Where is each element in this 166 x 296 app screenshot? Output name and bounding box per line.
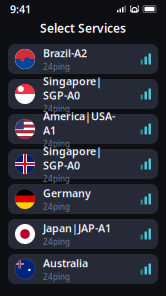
staticText: 24ping <box>43 236 70 247</box>
staticText: 9:41 <box>10 2 31 16</box>
staticText: 24ping <box>43 103 70 114</box>
staticText: 24ping <box>43 138 70 149</box>
staticText: 24ping <box>43 201 70 212</box>
button[interactable]: Germany <box>8 184 158 214</box>
button[interactable]: Brazil-A2 <box>8 44 158 74</box>
staticText: Australia <box>43 256 88 270</box>
button[interactable]: Singapore|SGP-A0 <box>8 79 158 109</box>
button[interactable]: Australia <box>8 254 158 284</box>
staticText: Germany <box>43 186 91 200</box>
staticText: Singapore|SGP-A0 <box>43 74 102 102</box>
button[interactable]: Japan|JAP-A1 <box>8 219 158 249</box>
staticText: Japan|JAP-A1 <box>43 221 111 235</box>
staticText: 24ping <box>43 61 70 72</box>
staticText: 24ping <box>43 173 70 184</box>
staticText: America|USA-A1 <box>43 109 115 137</box>
staticText: Brazil-A2 <box>43 46 87 60</box>
staticText: Singapore|SGP-A0 <box>43 144 102 172</box>
staticText: 24ping <box>43 271 70 282</box>
button[interactable]: Singapore|SGP-A0 <box>8 149 158 179</box>
button[interactable]: America|USA-A1 <box>8 114 158 144</box>
staticText: Select Services <box>40 20 126 36</box>
